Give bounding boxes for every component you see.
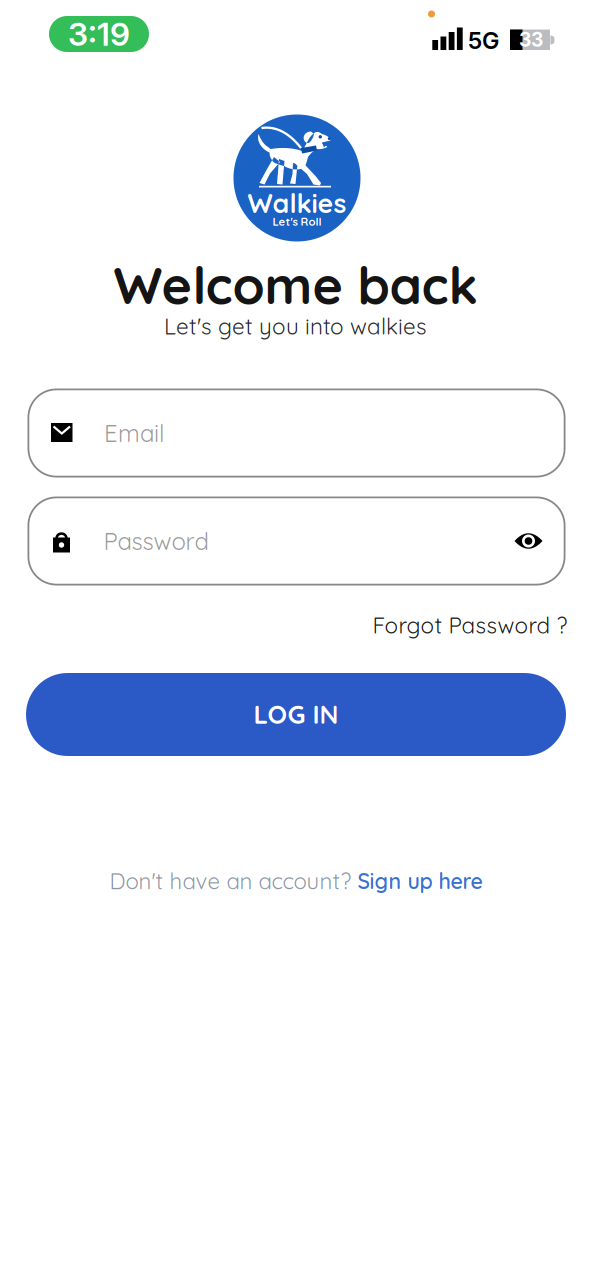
staticText: Sign up here	[357, 868, 482, 894]
staticText: 3:19	[68, 15, 130, 53]
staticText: Welcome back	[113, 252, 477, 317]
staticText: Don't have an account?	[109, 867, 351, 895]
staticText: Walkies	[247, 186, 346, 220]
staticText: LOG IN	[253, 698, 338, 730]
staticText: Email	[104, 418, 164, 448]
staticText: Let's get you into walkies	[164, 312, 427, 340]
staticText: Password	[103, 526, 208, 556]
staticText: Let's Roll	[272, 214, 321, 229]
staticText: 33	[519, 28, 543, 51]
staticText: Forgot Password ?	[372, 611, 567, 639]
staticText: 5G	[468, 26, 499, 55]
